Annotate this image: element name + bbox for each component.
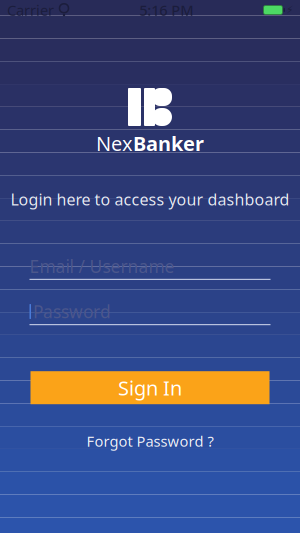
button[interactable]: Sign In xyxy=(30,371,269,404)
staticText: Sign In xyxy=(118,374,182,401)
staticText: Forgot Password ? xyxy=(86,431,213,451)
staticText: ⚡︎ xyxy=(286,4,293,16)
button[interactable]: Forgot Password ? xyxy=(76,426,223,456)
staticText: 5:16 PM xyxy=(139,0,193,20)
staticText: Nex xyxy=(96,130,133,157)
staticText: Login here to access your dashboard xyxy=(10,189,289,210)
staticText: Password xyxy=(33,300,111,323)
staticText: Banker xyxy=(133,130,204,157)
staticText: Carrier xyxy=(7,0,54,20)
staticText: Email / Username xyxy=(29,255,174,278)
